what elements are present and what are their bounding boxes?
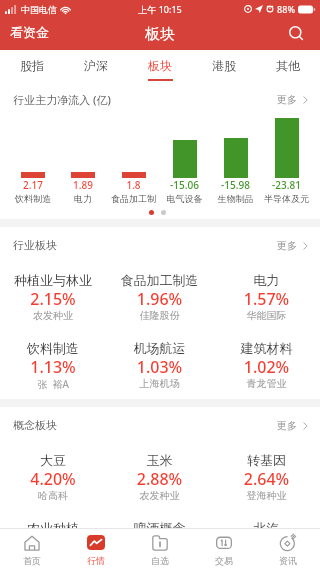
button[interactable]: Search	[278, 21, 320, 48]
staticText: 自选	[128, 555, 192, 566]
staticText: 电力	[58, 193, 108, 204]
staticText: 1.89	[58, 178, 108, 192]
staticText: 1.13%	[0, 356, 106, 378]
staticText: 电气设备	[159, 193, 210, 204]
staticText: 食品加工制造	[106, 272, 213, 288]
button[interactable]: 电力	[213, 263, 320, 331]
staticText: 北汽	[213, 520, 320, 536]
staticText: 种植业与林业	[0, 272, 106, 288]
button[interactable]: 玉米	[106, 443, 213, 511]
staticText: 股指	[0, 58, 64, 73]
button[interactable]: 农业种植	[0, 511, 106, 568]
button[interactable]: 机场航运	[106, 331, 213, 399]
button[interactable]: 啤酒概念	[106, 511, 213, 568]
button[interactable]: 交易	[192, 529, 256, 568]
button[interactable]: 板块	[128, 50, 192, 88]
button[interactable]: 其他	[256, 50, 320, 88]
button[interactable]: 饮料制造	[0, 331, 106, 399]
button[interactable]: 大豆	[0, 443, 106, 511]
button[interactable]: 港股	[192, 50, 256, 88]
staticText: 更多	[277, 419, 297, 432]
staticText: 农发种业	[0, 309, 106, 322]
staticText: 行业板块	[13, 238, 57, 252]
staticText: 港股	[192, 58, 256, 73]
staticText: 1.03%	[106, 356, 213, 378]
staticText: 玉米	[106, 452, 213, 468]
staticText: 登海种业	[213, 489, 320, 502]
staticText: 行情	[64, 555, 128, 566]
staticText: 沪深	[64, 58, 128, 73]
staticText: 饮料制造	[0, 340, 106, 356]
staticText: 2.17	[8, 178, 58, 192]
staticText: 农发种业	[106, 489, 213, 502]
staticText: 2.15%	[0, 288, 106, 310]
staticText: 半导体及元	[261, 193, 312, 204]
staticText: 2.88%	[106, 468, 213, 490]
button[interactable]: 北汽	[213, 511, 320, 568]
staticText: 电力	[213, 272, 320, 288]
staticText: 看资金	[10, 24, 49, 40]
staticText: 1.96%	[106, 288, 213, 310]
staticText: 转基因	[213, 452, 320, 468]
staticText: 更多	[277, 239, 297, 252]
button[interactable]: 自选	[128, 529, 192, 568]
staticText: 交易	[192, 555, 256, 566]
staticText: 首页	[0, 555, 64, 566]
button[interactable]: 首页	[0, 529, 64, 568]
staticText: 北汽蓝谷	[213, 557, 320, 568]
staticText: 上海机场	[106, 377, 213, 390]
staticText: 中国电信	[21, 4, 57, 15]
staticText: 佳隆股份	[106, 309, 213, 322]
button[interactable]: 转基因	[213, 443, 320, 511]
button[interactable]: 股指	[0, 50, 64, 88]
staticText: 哈高科	[0, 489, 106, 502]
staticText: 2.64%	[213, 468, 320, 490]
button[interactable]: 建筑材料	[213, 331, 320, 399]
staticText: 资讯	[256, 555, 320, 566]
staticText: 农业种植	[0, 520, 106, 536]
staticText: 大豆	[0, 452, 106, 468]
button[interactable]: 沪深	[64, 50, 128, 88]
staticText: -15.06	[159, 178, 210, 192]
button[interactable]: 行情	[64, 529, 128, 568]
staticText: 北大荒	[0, 557, 106, 568]
staticText: -15.98	[210, 178, 261, 192]
staticText: 板块	[128, 58, 192, 73]
staticText: 2.10%	[0, 536, 106, 558]
button[interactable]: 更多	[277, 239, 320, 252]
button[interactable]: 看资金	[0, 21, 59, 47]
button[interactable]: 更多	[277, 93, 320, 106]
staticText: 生物制品	[210, 193, 261, 204]
button[interactable]: 资讯	[256, 529, 320, 568]
staticText: 其他	[256, 58, 320, 73]
staticText: 饮料制造	[8, 193, 58, 204]
staticText: 行业主力净流入 (亿)	[13, 92, 111, 107]
button[interactable]: 种植业与林业	[0, 263, 106, 331]
staticText: 4.20%	[0, 468, 106, 490]
staticText: 1.57%	[213, 288, 320, 310]
staticText: 概念板块	[13, 418, 57, 432]
staticText: 1.8	[108, 178, 159, 192]
staticText: 1.77%	[213, 536, 320, 558]
staticText: 更多	[277, 93, 297, 106]
staticText: 青龙管业	[213, 377, 320, 390]
button[interactable]: 更多	[277, 419, 320, 432]
button[interactable]: 食品加工制造	[106, 263, 213, 331]
staticText: 惠泉啤酒	[106, 557, 213, 568]
staticText: -23.81	[261, 178, 312, 192]
staticText: 上午 10:15	[138, 3, 182, 15]
staticText: 88%	[277, 3, 295, 15]
staticText: 食品加工制	[108, 193, 159, 204]
staticText: 机场航运	[106, 340, 213, 356]
staticText: 张 裕A	[0, 377, 106, 391]
staticText: 板块	[145, 25, 175, 44]
staticText: 1.88%	[106, 536, 213, 558]
staticText: 华能国际	[213, 309, 320, 322]
staticText: 建筑材料	[213, 340, 320, 356]
staticText: 啤酒概念	[106, 520, 213, 536]
staticText: 1.02%	[213, 356, 320, 378]
